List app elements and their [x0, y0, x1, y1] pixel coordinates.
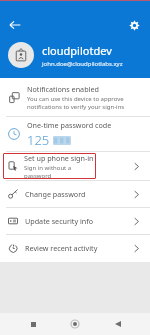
button[interactable]: Back — [108, 314, 128, 334]
staticText: Review recent activity — [25, 243, 130, 253]
button[interactable]: Update security info — [0, 208, 150, 234]
staticText: 125 — [27, 131, 50, 149]
button[interactable]: Review recent activity — [0, 235, 150, 261]
staticText: One-time password code — [27, 120, 112, 130]
staticText: john.doe@cloudpilotlabs.xyz — [42, 60, 123, 68]
staticText: Sign in without a password — [24, 164, 96, 179]
staticText: You can use this device to approve notif… — [27, 95, 142, 111]
staticText: cloudpilotdev — [42, 43, 112, 58]
button[interactable]: Settings — [123, 14, 145, 36]
staticText: Update security info — [25, 216, 130, 226]
button[interactable]: Home — [65, 314, 85, 334]
button[interactable]: Change password — [0, 181, 150, 207]
staticText: Notifications enabled — [27, 84, 99, 94]
button[interactable]: Set up phone sign-in — [0, 152, 150, 180]
button[interactable]: Recents — [23, 314, 43, 334]
staticText: Change password — [25, 189, 130, 199]
button[interactable]: Back — [4, 14, 26, 36]
staticText: Set up phone sign-in — [24, 153, 94, 163]
